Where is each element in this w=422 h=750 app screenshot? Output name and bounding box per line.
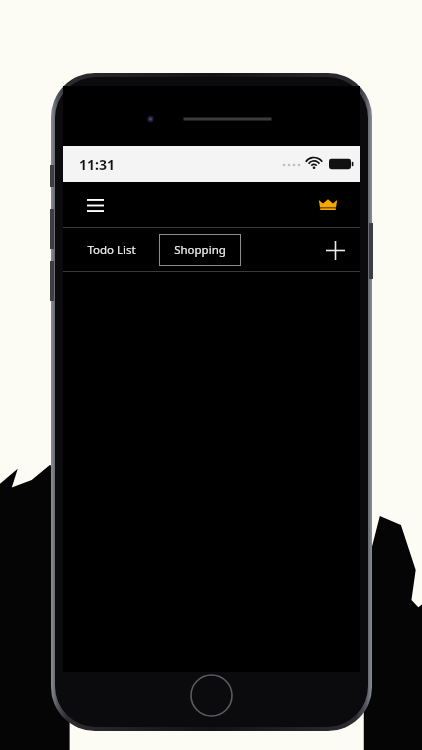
button[interactable]: Home [190,674,233,717]
button[interactable]: Todo List [63,228,159,272]
staticText: 11:31 [79,155,115,174]
button[interactable]: Shopping [159,234,241,266]
staticText: Todo List [87,242,136,258]
button[interactable]: Add item [310,228,360,272]
button[interactable]: Premium [308,185,348,225]
button[interactable]: Menu [75,185,115,225]
staticText: Shopping [174,242,226,258]
